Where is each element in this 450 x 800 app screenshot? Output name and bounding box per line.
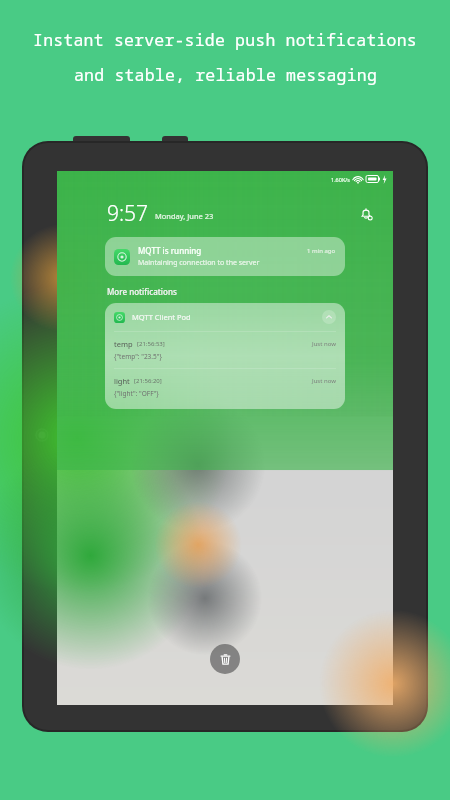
staticText: and stable, reliable messaging — [74, 63, 377, 85]
staticText: {"light": "OFF"} — [114, 389, 159, 398]
staticText: temp — [114, 339, 133, 349]
button[interactable]: Notification settings — [357, 205, 375, 223]
staticText: MQTT is running — [138, 245, 307, 256]
staticText: Maintaining connection to the server — [138, 258, 260, 268]
staticText: 1 min ago — [307, 247, 336, 255]
staticText: light — [114, 376, 130, 386]
staticText: 1.60K/s — [331, 176, 350, 183]
button[interactable]: MQTT Client Pod — [105, 303, 345, 331]
other: Side button — [35, 428, 49, 442]
staticText: Just now — [312, 377, 336, 385]
staticText: [21:56:20] — [134, 377, 312, 385]
button[interactable]: Collapse group — [322, 310, 336, 324]
staticText: Just now — [312, 340, 336, 348]
staticText: 9:57 — [107, 199, 149, 228]
staticText: [21:56:53] — [137, 340, 312, 348]
button[interactable]: MQTT is running — [105, 237, 345, 276]
staticText: Monday, June 23 — [155, 211, 214, 221]
staticText: {"temp": "23.5"} — [114, 352, 162, 361]
button[interactable]: Clear all notifications — [210, 644, 240, 674]
staticText: More notifications — [107, 286, 177, 297]
button[interactable]: temp — [105, 332, 345, 368]
staticText: MQTT Client Pod — [132, 312, 322, 322]
staticText: Instant server-side push notifications — [33, 28, 417, 50]
button[interactable]: light — [105, 369, 345, 405]
